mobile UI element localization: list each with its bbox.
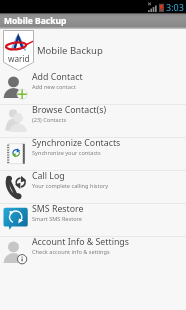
button[interactable]: Synchronize Contacts bbox=[0, 138, 186, 170]
staticText: Mobile Backup bbox=[37, 44, 103, 57]
button[interactable]: Account Info & Settings bbox=[0, 237, 186, 269]
staticText: Add Contact bbox=[32, 71, 83, 83]
staticText: Browse Contact(s) bbox=[32, 104, 107, 116]
staticText: Smart SMS Restore bbox=[32, 215, 82, 223]
staticText: Synchronize your contacts bbox=[32, 149, 101, 157]
button[interactable]: warid bbox=[0, 29, 186, 72]
staticText: 3:03 bbox=[166, 1, 184, 13]
staticText: (23) Contacts bbox=[32, 116, 67, 124]
staticText: Mobile Backup bbox=[4, 15, 67, 27]
button[interactable]: Browse Contact(s) bbox=[0, 105, 186, 137]
staticText: Your complete calling history bbox=[32, 182, 109, 190]
staticText: Account Info & Settings bbox=[32, 236, 129, 248]
staticText: Check account info & settings bbox=[32, 248, 110, 256]
staticText: Add new contact bbox=[32, 83, 76, 91]
button[interactable]: SMS Restore bbox=[0, 204, 186, 236]
staticText: warid bbox=[8, 53, 30, 64]
staticText: SMS Restore bbox=[32, 203, 84, 215]
staticText: Call Log bbox=[32, 170, 65, 182]
staticText: Synchronize Contacts bbox=[32, 137, 121, 149]
button[interactable]: Call Log bbox=[0, 171, 186, 203]
button[interactable]: Add Contact bbox=[0, 72, 186, 104]
